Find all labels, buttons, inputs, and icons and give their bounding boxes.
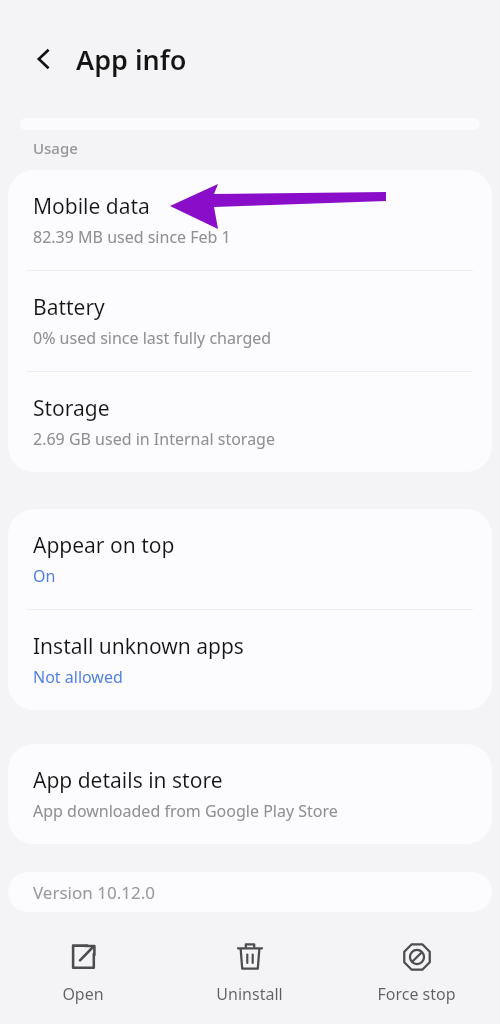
staticText: Install unknown apps	[33, 632, 244, 661]
staticText: Appear on top	[33, 531, 175, 560]
staticText: 82.39 MB used since Feb 1	[33, 226, 231, 248]
button[interactable]: Uninstall	[166, 912, 333, 1005]
staticText: Not allowed	[33, 666, 123, 688]
button[interactable]: Battery	[8, 271, 492, 371]
staticText: Battery	[33, 293, 105, 322]
button[interactable]: Mobile data	[8, 170, 492, 270]
staticText: 2.69 GB used in Internal storage	[33, 428, 275, 450]
button[interactable]: Storage	[8, 372, 492, 472]
button[interactable]: App details in store	[8, 744, 492, 844]
staticText: App downloaded from Google Play Store	[33, 800, 338, 822]
button[interactable]: Back	[18, 33, 70, 85]
staticText: Storage	[33, 394, 110, 423]
staticText: App details in store	[33, 766, 223, 795]
button[interactable]: Appear on top	[8, 509, 492, 609]
button[interactable]: App details in store	[8, 744, 492, 844]
staticText: Usage	[33, 138, 78, 158]
staticText: App info	[76, 41, 187, 78]
staticText: Force stop	[377, 983, 456, 1005]
button[interactable]: Open	[0, 912, 166, 1005]
button[interactable]: Install unknown apps	[8, 610, 492, 710]
staticText: Version 10.12.0	[33, 881, 155, 904]
staticText: Open	[62, 983, 104, 1005]
staticText: On	[33, 565, 56, 587]
staticText: Uninstall	[216, 983, 283, 1005]
staticText: Mobile data	[33, 192, 150, 221]
button[interactable]: Version 10.12.0	[8, 872, 492, 912]
staticText: 0% used since last fully charged	[33, 327, 272, 349]
button[interactable]: Force stop	[333, 912, 500, 1005]
